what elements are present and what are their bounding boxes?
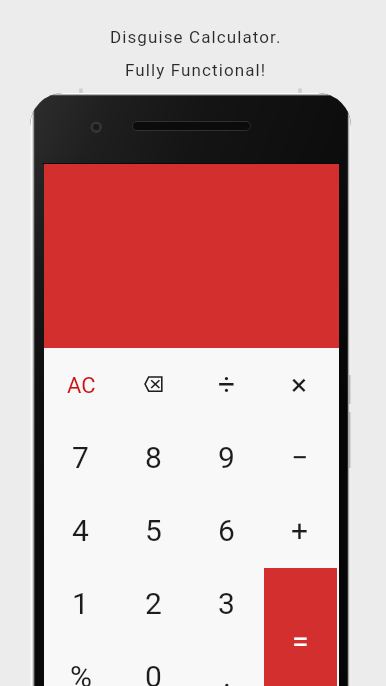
button[interactable]: × — [263, 348, 336, 421]
staticText: + — [291, 513, 309, 548]
staticText: % — [70, 659, 92, 686]
button[interactable]: 4 — [44, 494, 117, 567]
staticText: ÷ — [218, 367, 236, 402]
button[interactable]: ÷ — [190, 348, 263, 421]
button[interactable]: 3 — [190, 567, 263, 640]
staticText: 5 — [145, 513, 162, 548]
staticText: 4 — [72, 513, 89, 548]
staticText: 3 — [218, 586, 235, 621]
button[interactable]: + — [263, 494, 336, 567]
staticText: 0 — [145, 659, 162, 686]
button[interactable] — [263, 640, 336, 686]
staticText: 6 — [218, 513, 235, 548]
button[interactable] — [263, 567, 336, 640]
other: Backspace — [144, 376, 164, 393]
button[interactable]: 1 — [44, 567, 117, 640]
staticText: 2 — [145, 586, 162, 621]
button[interactable]: Backspace — [117, 348, 190, 421]
staticText: 8 — [145, 440, 162, 475]
staticText: 9 — [218, 440, 235, 475]
staticText: . — [223, 659, 231, 686]
staticText: Disguise Calculator. — [110, 27, 282, 47]
button[interactable]: AC — [44, 348, 117, 421]
staticText: 1 — [72, 586, 89, 621]
button[interactable]: 2 — [117, 567, 190, 640]
staticText: = — [292, 624, 309, 659]
staticText: Fully Functional! — [125, 60, 267, 80]
button[interactable]: − — [263, 421, 336, 494]
staticText: × — [291, 367, 308, 402]
button[interactable]: % — [44, 640, 117, 686]
staticText: − — [291, 440, 309, 475]
staticText: AC — [67, 373, 96, 399]
button[interactable]: 9 — [190, 421, 263, 494]
button[interactable]: = — [264, 568, 337, 686]
button[interactable]: 6 — [190, 494, 263, 567]
staticText: 7 — [72, 440, 89, 475]
button[interactable]: 0 — [117, 640, 190, 686]
button[interactable]: 8 — [117, 421, 190, 494]
button[interactable]: 7 — [44, 421, 117, 494]
button[interactable]: 5 — [117, 494, 190, 567]
button[interactable]: . — [190, 640, 263, 686]
